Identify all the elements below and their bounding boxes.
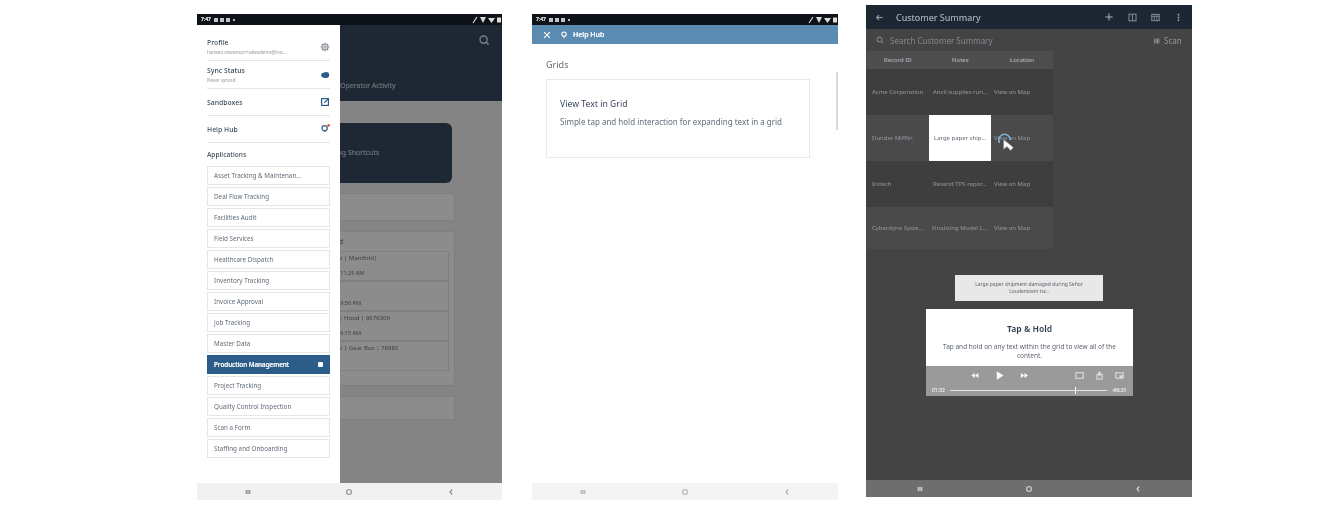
staticText: 7:47 bbox=[536, 16, 546, 23]
staticText: Acme Corporation bbox=[872, 88, 924, 96]
button[interactable]: Scan a Form bbox=[207, 418, 330, 437]
button[interactable]: Inventory Tracking bbox=[207, 271, 330, 290]
staticText: Never synced bbox=[207, 77, 236, 83]
staticText: View on Map bbox=[994, 180, 1031, 188]
button[interactable]: Toyota | Hood | 8676309 bbox=[313, 311, 449, 341]
button[interactable]: Initech bbox=[866, 161, 1053, 207]
button[interactable]: More options bbox=[1173, 12, 1184, 23]
staticText: 7/30/20 9:50 PM bbox=[319, 299, 361, 306]
button[interactable]: Staffing and Onboarding bbox=[207, 439, 330, 458]
staticText: -00:21 bbox=[1112, 387, 1127, 394]
other: Help Hub bbox=[320, 124, 330, 134]
button[interactable]: Sync Status bbox=[207, 61, 330, 88]
button[interactable]: Map bbox=[1127, 12, 1138, 23]
button[interactable]: Deal Flow Tracking bbox=[207, 187, 330, 206]
staticText: | | N bbox=[319, 284, 334, 292]
staticText: Grids bbox=[546, 58, 569, 70]
staticText: Notes bbox=[952, 56, 969, 64]
staticText: Master Data bbox=[214, 339, 251, 348]
staticText: Invoice Approval bbox=[214, 297, 264, 306]
staticText: Asset Tracking & Maintenan… bbox=[214, 171, 302, 180]
button[interactable]: Profile bbox=[207, 33, 330, 60]
staticText: Cyberdyne Syste… bbox=[872, 224, 924, 232]
staticText: 01:32 bbox=[932, 387, 945, 394]
staticText: 8/27/20 11:25 AM bbox=[319, 269, 365, 276]
button[interactable]: Acme Corporation bbox=[866, 69, 1053, 115]
button[interactable]: Hyundai | Manifold| bbox=[313, 251, 449, 281]
button[interactable]: Master Data bbox=[207, 334, 330, 353]
button[interactable]: Production Management bbox=[207, 355, 330, 374]
button[interactable]: Back bbox=[736, 483, 838, 500]
button[interactable]: Recents bbox=[532, 483, 634, 500]
button[interactable]: Dunder Mifflin bbox=[866, 115, 1053, 161]
button[interactable]: Fast forward bbox=[1018, 369, 1031, 382]
staticText: Hyundai | Manifold| bbox=[319, 254, 378, 262]
button[interactable]: Cyberdyne Syste… bbox=[866, 207, 1053, 249]
staticText: Resend TPS repor… bbox=[933, 180, 987, 188]
button[interactable]: Rewind bbox=[968, 369, 981, 382]
other: Sandboxes bbox=[320, 97, 330, 107]
staticText: Simple tap and hold interaction for expa… bbox=[560, 116, 783, 127]
button[interactable]: Fullscreen bbox=[1114, 370, 1125, 381]
staticText: View Text in Grid bbox=[560, 98, 628, 110]
staticText: Sync Status bbox=[207, 66, 245, 75]
button[interactable]: Home bbox=[634, 483, 736, 500]
button[interactable]: Sandboxes bbox=[207, 89, 330, 115]
staticText: Deal Flow Tracking bbox=[214, 192, 270, 201]
button[interactable]: Healthcare Dispatch bbox=[207, 250, 330, 269]
staticText: Tap and hold on any text within the grid… bbox=[936, 342, 1123, 360]
button[interactable]: Quality Control Inspection bbox=[207, 397, 330, 416]
button[interactable]: Search Customer Summary bbox=[876, 29, 1182, 51]
button[interactable]: Project Tracking bbox=[207, 376, 330, 395]
staticText: Scan a Form bbox=[214, 423, 251, 432]
staticText: Finalizing Model L… bbox=[932, 224, 988, 232]
button[interactable]: Asset Tracking & Maintenan… bbox=[207, 166, 330, 185]
button[interactable]: Back bbox=[874, 12, 885, 23]
button[interactable]: Invoice Approval bbox=[207, 292, 330, 311]
staticText: Dunder Mifflin bbox=[872, 134, 913, 142]
button[interactable]: Hyundai | Gear Box | 78985 bbox=[313, 341, 449, 371]
staticText: Toyota | Hood | 8676309 bbox=[319, 314, 390, 322]
button[interactable]: Grid view bbox=[1150, 12, 1161, 23]
staticText: Released bbox=[313, 237, 344, 247]
button[interactable]: Help Hub bbox=[207, 116, 330, 142]
staticText: View on Map bbox=[994, 88, 1031, 96]
staticText: harlean.stevenson+salesdemo@trac… bbox=[207, 49, 287, 55]
staticText: Large paper shipment damaged during Seño… bbox=[961, 281, 1097, 295]
staticText: View on Map bbox=[994, 224, 1031, 232]
staticText: Sandboxes bbox=[207, 98, 243, 107]
staticText: Customer Summary bbox=[896, 11, 981, 23]
button[interactable]: Back bbox=[1083, 480, 1192, 497]
staticText: Location bbox=[1010, 56, 1035, 64]
button[interactable]: Add bbox=[1103, 11, 1115, 23]
staticText: Job Tracking bbox=[214, 318, 251, 327]
staticText: Search Customer Summary bbox=[890, 35, 993, 46]
button[interactable]: Cast bbox=[1074, 370, 1085, 381]
button[interactable]: Field Services bbox=[207, 229, 330, 248]
staticText: Project Tracking bbox=[214, 381, 262, 390]
staticText: Applications bbox=[207, 150, 247, 159]
staticText: View on Map bbox=[994, 134, 1031, 142]
staticText: Inventory Tracking bbox=[214, 276, 270, 285]
staticText: Operator Activity bbox=[340, 81, 396, 91]
button[interactable]: | | N bbox=[313, 281, 449, 311]
button[interactable]: Home bbox=[298, 483, 400, 500]
button[interactable]: View Text in Grid bbox=[546, 79, 810, 158]
button[interactable]: Facilities Audit bbox=[207, 208, 330, 227]
button[interactable]: Recents bbox=[866, 480, 974, 497]
button[interactable]: Back bbox=[400, 483, 502, 500]
button[interactable]: Recents bbox=[197, 483, 298, 500]
staticText: embly bbox=[301, 81, 322, 91]
button[interactable]: Share bbox=[1094, 370, 1105, 381]
other: Sync bbox=[320, 70, 330, 80]
staticText: Large paper ship… bbox=[934, 134, 987, 142]
button[interactable]: Scan bbox=[1153, 35, 1182, 46]
staticText: Help Hub bbox=[207, 125, 238, 134]
button[interactable]: Home bbox=[974, 480, 1083, 497]
staticText: Quality Control Inspection bbox=[214, 402, 292, 411]
button[interactable]: Close bbox=[541, 29, 553, 41]
button[interactable]: Job Tracking bbox=[207, 313, 330, 332]
staticText: Record ID bbox=[884, 56, 912, 64]
staticText: Tap & Hold bbox=[1007, 323, 1053, 335]
button[interactable]: Play bbox=[992, 368, 1007, 383]
